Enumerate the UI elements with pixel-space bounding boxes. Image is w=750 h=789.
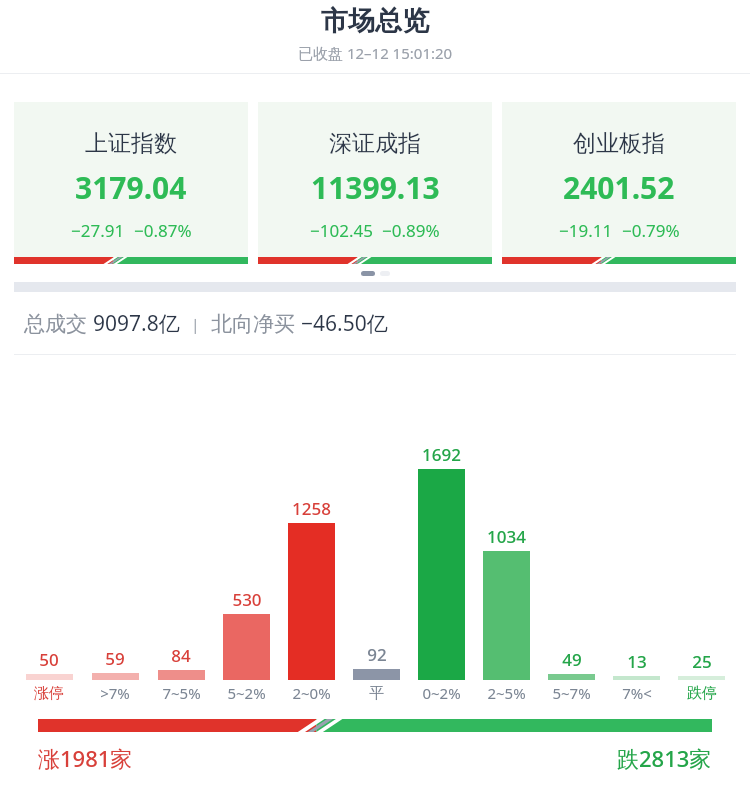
staticText: −102.45 — [310, 219, 373, 242]
staticText: −27.91 — [71, 219, 125, 242]
staticText: 50 — [39, 648, 59, 671]
staticText: 2~0% — [292, 683, 331, 703]
staticText: 1692 — [422, 443, 461, 466]
staticText: 创业板指 — [573, 129, 665, 158]
staticText: 北向净买 — [211, 309, 301, 338]
staticText: 2~5% — [487, 683, 526, 703]
staticText: 总成交 — [24, 309, 93, 338]
staticText: 跌2813家 — [617, 743, 712, 773]
staticText: 13 — [627, 650, 647, 673]
staticText: 2401.52 — [563, 167, 675, 208]
staticText: 530 — [232, 588, 262, 611]
staticText: 平 — [369, 684, 384, 703]
staticText: 9097.8亿 — [93, 309, 180, 338]
staticText: −0.79% — [622, 219, 680, 242]
staticText: 0~2% — [422, 683, 461, 703]
staticText: 市场总览 — [321, 4, 429, 38]
staticText: >7% — [100, 683, 130, 703]
staticText: 59 — [105, 647, 125, 670]
staticText: 1258 — [292, 497, 331, 520]
staticText: 上证指数 — [85, 129, 177, 158]
button[interactable]: 深证成指 — [258, 102, 492, 264]
button[interactable]: 创业板指 — [502, 102, 736, 264]
staticText: 84 — [171, 644, 191, 667]
staticText: 1034 — [487, 525, 526, 548]
staticText: 跌停 — [687, 684, 717, 703]
staticText: 3179.04 — [75, 167, 187, 208]
staticText: 涨停 — [34, 684, 64, 703]
staticText: −19.11 — [559, 219, 613, 242]
staticText: 7~5% — [162, 683, 201, 703]
button[interactable]: 上证指数 — [14, 102, 248, 264]
staticText: 49 — [562, 648, 582, 671]
staticText: 11399.13 — [311, 167, 440, 208]
staticText: 已收盘 12–12 15:01:20 — [298, 43, 453, 63]
staticText: −46.50亿 — [301, 309, 388, 338]
staticText: 25 — [692, 650, 712, 673]
staticText: 5~7% — [552, 683, 591, 703]
staticText: −0.89% — [382, 219, 440, 242]
staticText: ｜ — [180, 314, 211, 334]
staticText: −0.87% — [134, 219, 192, 242]
staticText: 涨1981家 — [38, 743, 133, 773]
staticText: 7%< — [622, 683, 652, 703]
staticText: 5~2% — [227, 683, 266, 703]
staticText: 92 — [367, 643, 387, 666]
button[interactable]: 总成交 — [0, 292, 750, 354]
staticText: 深证成指 — [329, 129, 421, 158]
